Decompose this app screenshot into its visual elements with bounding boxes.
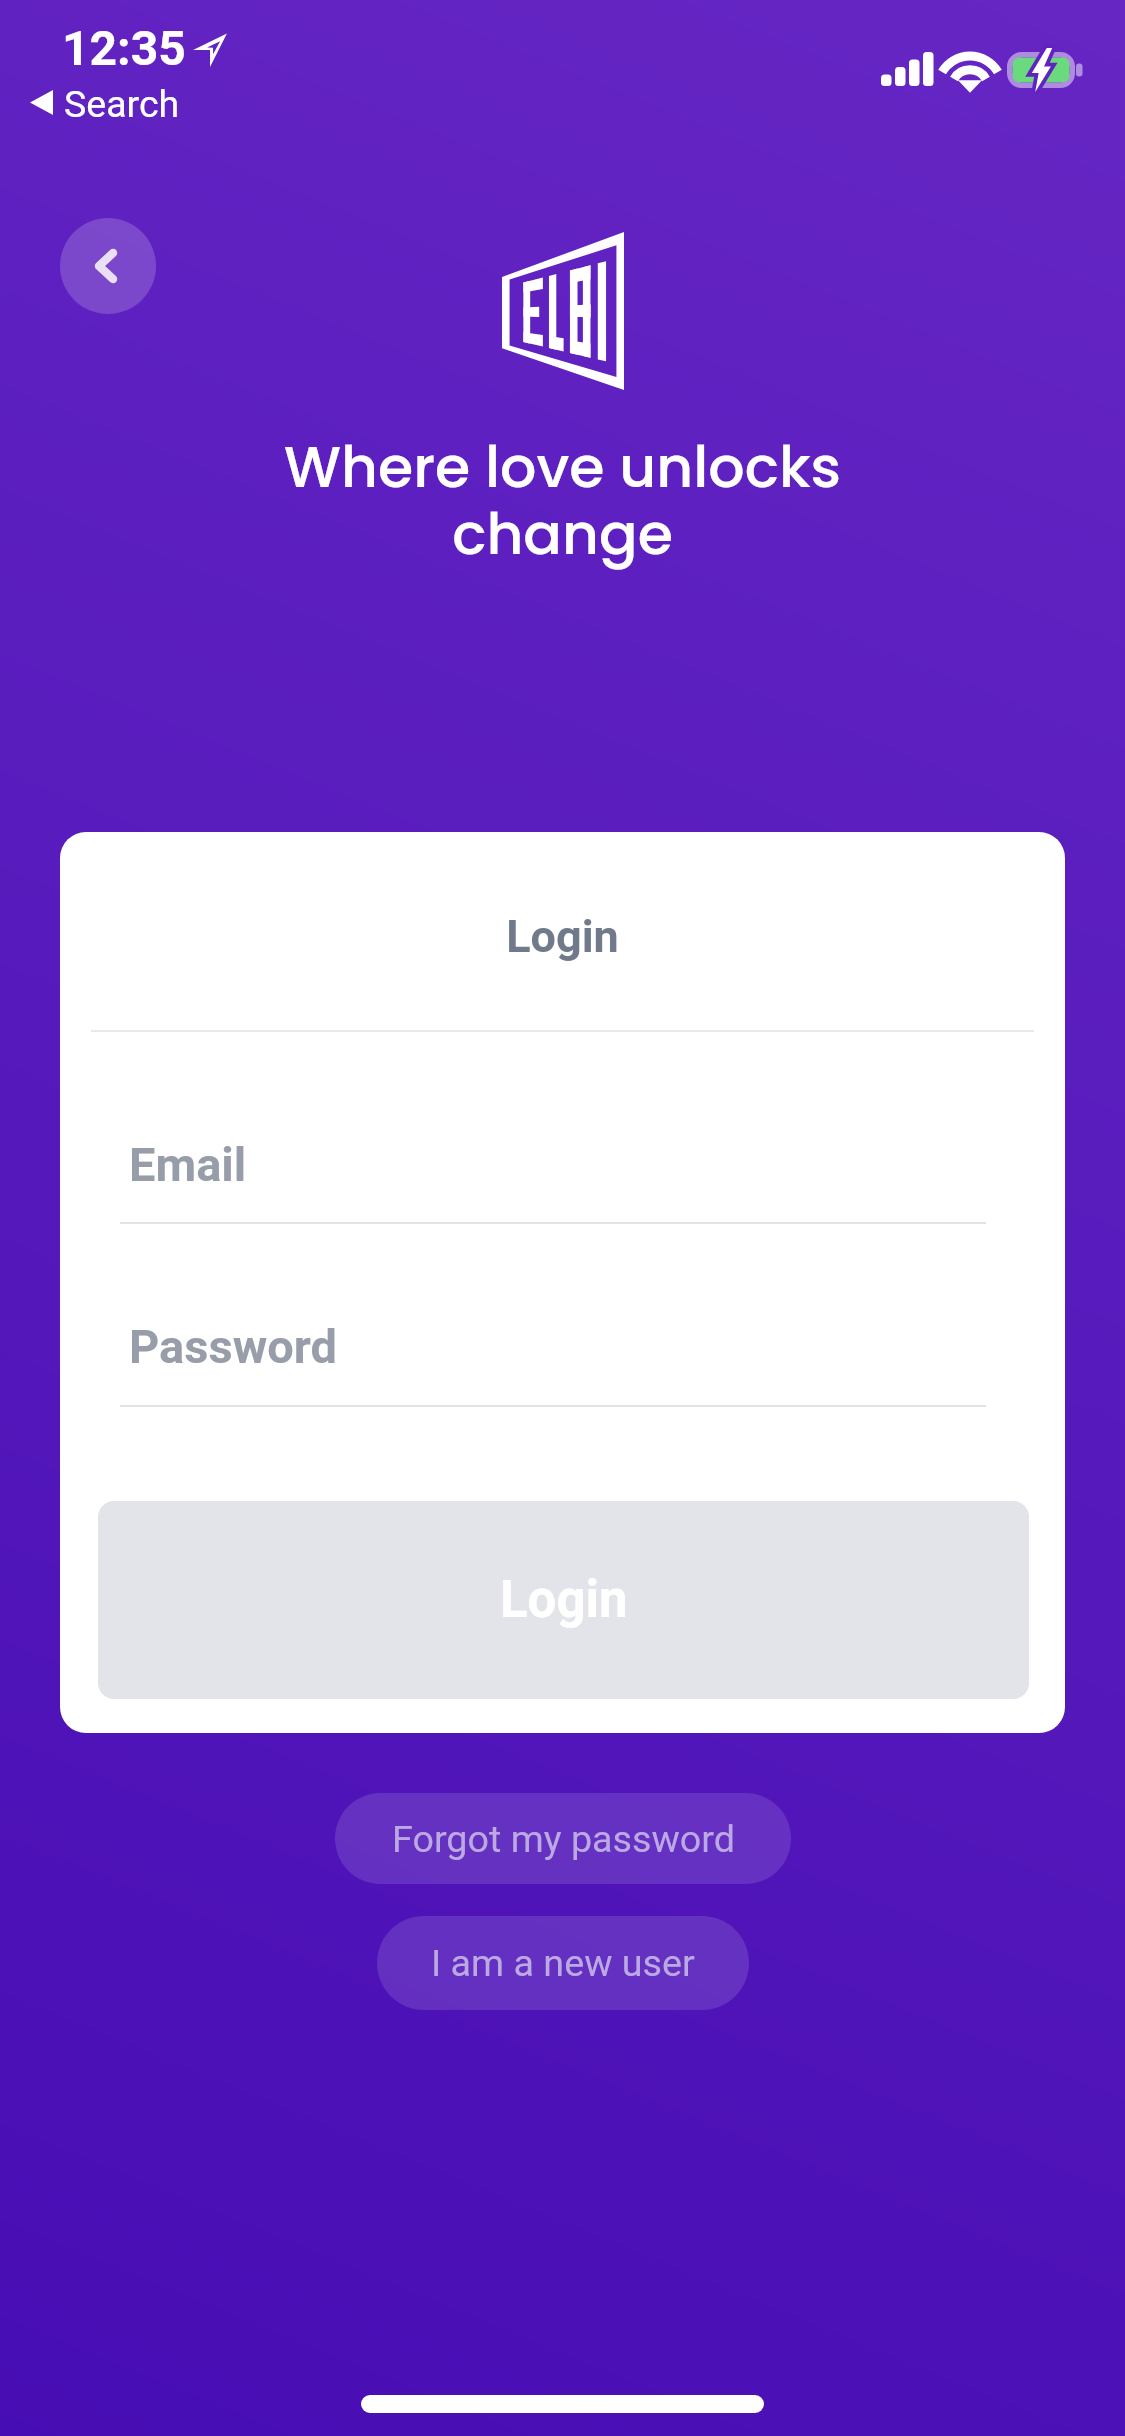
button[interactable]: Forgot my password [335, 1793, 791, 1884]
staticText: I am a new user [431, 1941, 695, 1985]
button[interactable]: Back [60, 218, 156, 314]
staticText: 12:35 [62, 20, 186, 76]
staticText: Where love unlocks change [0, 427, 1125, 574]
staticText: Search [64, 82, 180, 126]
staticText: Forgot my password [392, 1817, 735, 1861]
staticText: Login [500, 1570, 628, 1630]
staticText: Password [129, 1319, 338, 1374]
staticText: Email [129, 1137, 247, 1192]
staticText: Login [506, 910, 619, 963]
button[interactable]: I am a new user [377, 1916, 749, 2010]
button[interactable]: Login [98, 1501, 1029, 1699]
